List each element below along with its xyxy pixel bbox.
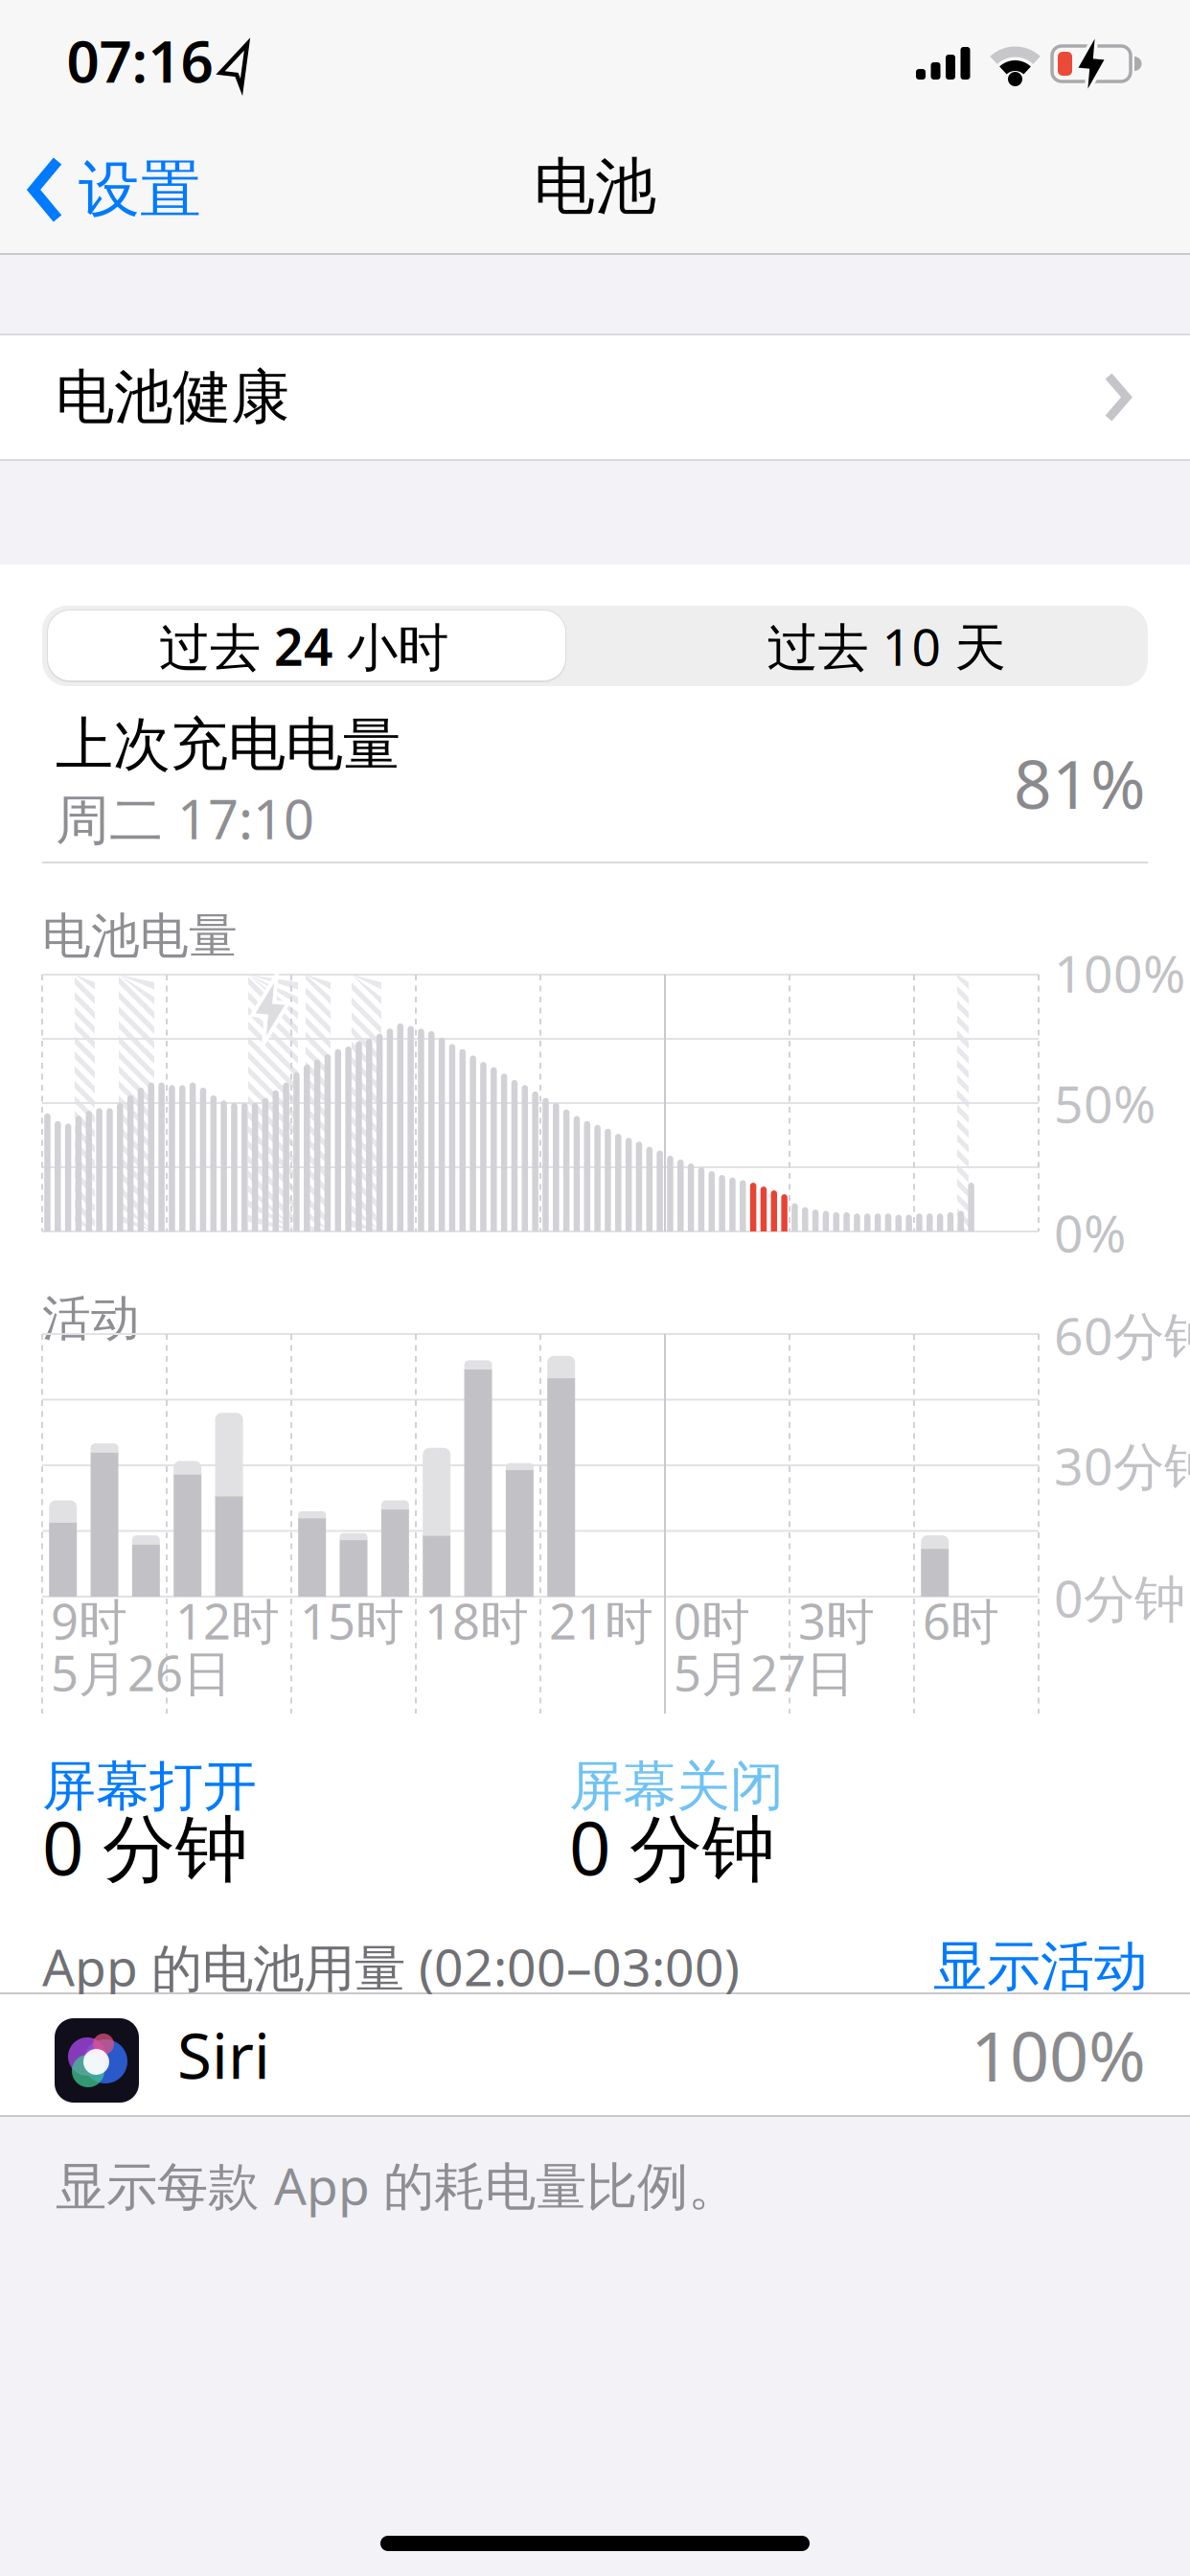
staticText: 0分钟 [1054, 1564, 1185, 1631]
staticText: 100% [971, 2009, 1146, 2100]
staticText: 21时 [549, 1588, 653, 1653]
staticText: 12时 [175, 1588, 280, 1653]
staticText: 50% [1054, 1069, 1156, 1137]
staticText: 6时 [923, 1588, 999, 1653]
staticText: 3时 [798, 1588, 875, 1653]
staticText: 0 分钟 [569, 1798, 775, 1895]
staticText: 上次充电电量 [56, 709, 400, 780]
staticText: 屏幕打开 [42, 1753, 257, 1819]
staticText: 0% [1054, 1198, 1126, 1266]
staticText: 过去 24 小时 [159, 612, 448, 680]
staticText: 设置 [79, 152, 201, 227]
button[interactable]: 屏幕打开 [42, 1759, 483, 1886]
staticText: 周二 17:10 [56, 783, 314, 854]
staticText: 0 分钟 [42, 1798, 248, 1895]
staticText: 18时 [424, 1588, 529, 1653]
staticText: 100% [1054, 939, 1185, 1007]
staticText: 电池 [534, 149, 656, 225]
button[interactable]: Siri [0, 1994, 1190, 2115]
button[interactable]: 设置 [29, 126, 201, 253]
staticText: 07:16 [67, 22, 213, 99]
staticText: 81% [1014, 739, 1146, 827]
staticText: 15时 [300, 1588, 404, 1653]
button[interactable]: 过去 10 天 [625, 606, 1148, 686]
staticText: 9时 [51, 1588, 127, 1653]
staticText: 活动 [42, 1289, 140, 1348]
staticText: 屏幕关闭 [569, 1753, 784, 1819]
staticText: App 的电池用量 (02:00–03:00) [42, 1932, 740, 2001]
staticText: 电池电量 [42, 906, 238, 966]
button[interactable]: 电池健康 [0, 335, 1190, 459]
staticText: 5月26日 [51, 1640, 232, 1705]
staticText: Siri [177, 2013, 270, 2096]
staticText: 0时 [674, 1588, 750, 1653]
staticText: 显示活动 [933, 1934, 1148, 1999]
button[interactable]: 显示活动 [860, 1938, 1148, 1995]
staticText: 5月27日 [674, 1640, 855, 1705]
button[interactable]: 过去 24 小时 [42, 606, 565, 686]
staticText: 显示每款 App 的耗电量比例。 [56, 2151, 739, 2219]
staticText: 电池健康 [56, 361, 289, 433]
staticText: 60分钟 [1054, 1301, 1190, 1369]
staticText: 过去 10 天 [767, 612, 1006, 680]
staticText: 30分钟 [1054, 1431, 1190, 1499]
button[interactable]: 屏幕关闭 [569, 1759, 1010, 1886]
